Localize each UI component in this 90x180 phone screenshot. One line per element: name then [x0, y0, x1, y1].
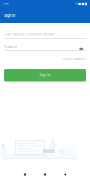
button[interactable]: Recent apps [15, 169, 35, 180]
staticText: Sign In [4, 13, 15, 18]
staticText: Sign In [39, 74, 50, 77]
button[interactable]: Back [55, 169, 75, 180]
button[interactable]: Home [35, 169, 55, 180]
button[interactable]: Sign In [4, 69, 86, 82]
staticText: 3:39 PM [3, 3, 9, 5]
button[interactable]: Forgot Password? [63, 56, 86, 62]
staticText: 4G [75, 3, 77, 5]
staticText: Password [4, 45, 17, 49]
staticText: Forgot Password? [63, 57, 86, 61]
staticText: Email Address / Enrollment Number [4, 33, 55, 36]
